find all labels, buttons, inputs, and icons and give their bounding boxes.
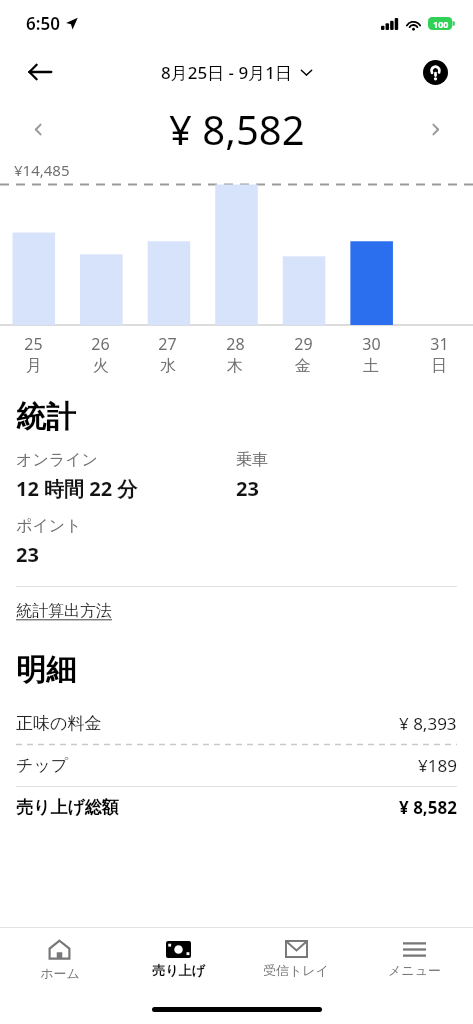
- staticText: 水: [160, 356, 176, 376]
- button[interactable]: Help: [411, 48, 459, 96]
- staticText: 8月25日 - 9月1日: [161, 61, 292, 84]
- staticText: 日: [431, 356, 447, 376]
- staticText: 27: [158, 333, 177, 355]
- button[interactable]: 売り上げ総額: [16, 787, 457, 828]
- staticText: 明細: [16, 651, 76, 689]
- staticText: 売り上げ: [152, 962, 205, 978]
- staticText: 木: [227, 356, 243, 376]
- staticText: 統計: [16, 398, 76, 436]
- button[interactable]: チップ: [16, 745, 457, 786]
- button[interactable]: Previous week: [16, 107, 60, 151]
- staticText: 25: [24, 333, 43, 355]
- button[interactable]: Next week: [413, 107, 457, 151]
- button[interactable]: ホーム: [0, 928, 119, 990]
- staticText: 統計算出方法: [16, 601, 112, 621]
- staticText: ¥14,485: [14, 160, 70, 180]
- staticText: 100: [433, 18, 449, 30]
- staticText: 受信トレイ: [263, 962, 329, 978]
- button[interactable]: 売り上げ: [119, 928, 237, 990]
- staticText: 30: [362, 333, 381, 355]
- staticText: 火: [93, 356, 109, 376]
- button[interactable]: 統計算出方法: [16, 601, 112, 621]
- button[interactable]: メニュー: [355, 928, 473, 990]
- staticText: 29: [294, 333, 313, 355]
- staticText: ¥189: [418, 754, 457, 777]
- staticText: 23: [16, 541, 39, 568]
- staticText: 金: [295, 356, 311, 376]
- button[interactable]: Back: [14, 46, 66, 98]
- staticText: オンライン: [16, 450, 98, 470]
- button[interactable]: 8月25日 - 9月1日: [161, 61, 313, 84]
- staticText: 売り上げ総額: [16, 797, 399, 818]
- staticText: 31: [430, 333, 449, 355]
- staticText: 6:50: [26, 12, 60, 35]
- staticText: ポイント: [16, 516, 82, 536]
- staticText: ホーム: [40, 965, 80, 981]
- staticText: ¥ 8,582: [169, 102, 305, 156]
- staticText: チップ: [16, 755, 418, 776]
- button[interactable]: 受信トレイ: [237, 928, 355, 990]
- staticText: 26: [91, 333, 110, 355]
- staticText: 23: [236, 475, 259, 502]
- staticText: 28: [226, 333, 245, 355]
- staticText: 乗車: [236, 450, 268, 470]
- staticText: メニュー: [388, 962, 441, 978]
- staticText: ¥ 8,582: [399, 796, 457, 819]
- staticText: 月: [26, 356, 42, 376]
- staticText: 土: [363, 356, 379, 376]
- staticText: 正味の料金: [16, 713, 399, 734]
- staticText: 12 時間 22 分: [16, 475, 138, 502]
- staticText: ¥ 8,393: [399, 712, 457, 735]
- button[interactable]: 正味の料金: [16, 703, 457, 744]
